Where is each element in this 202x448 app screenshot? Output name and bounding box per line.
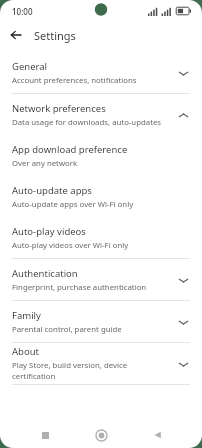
staticText: Auto-update apps: [12, 184, 92, 197]
button[interactable]: About: [0, 343, 202, 384]
staticText: Play Store, build version, device certif…: [12, 360, 166, 382]
button[interactable]: Network preferences: [0, 94, 202, 135]
staticText: Data usage for downloads, auto-updates: [12, 117, 162, 128]
button[interactable]: Expand: [172, 311, 194, 333]
staticText: Parental control, parent guide: [12, 324, 122, 335]
button[interactable]: General: [0, 52, 202, 93]
staticText: 10:00: [12, 6, 33, 17]
staticText: Network preferences: [12, 102, 106, 115]
button[interactable]: Family: [0, 301, 202, 342]
staticText: Auto-play videos: [12, 225, 86, 238]
button[interactable]: Collapse: [172, 104, 194, 126]
staticText: Auto-play videos over Wi-Fi only: [12, 240, 129, 251]
button[interactable]: Back: [6, 25, 26, 45]
button[interactable]: Home: [89, 423, 113, 447]
button[interactable]: Authentication: [0, 259, 202, 300]
staticText: General: [12, 60, 48, 73]
staticText: Authentication: [12, 267, 78, 280]
button[interactable]: Back: [146, 423, 170, 447]
staticText: About: [12, 345, 39, 358]
staticText: Family: [12, 309, 41, 322]
staticText: Over any network: [12, 158, 78, 169]
button[interactable]: Expand: [172, 353, 194, 375]
button[interactable]: Expand: [172, 269, 194, 291]
staticText: Account preferences, notifications: [12, 75, 137, 86]
staticText: Auto-update apps over Wi-Fi only: [12, 199, 134, 210]
staticText: Fingerprint, purchase authentication: [12, 282, 147, 293]
button[interactable]: Auto-play videos: [0, 217, 202, 258]
staticText: Settings: [34, 28, 76, 43]
button[interactable]: Recents: [33, 423, 57, 447]
button[interactable]: App download preference: [0, 135, 202, 176]
staticText: App download preference: [12, 143, 128, 156]
button[interactable]: Expand: [172, 62, 194, 84]
button[interactable]: Auto-update apps: [0, 176, 202, 217]
